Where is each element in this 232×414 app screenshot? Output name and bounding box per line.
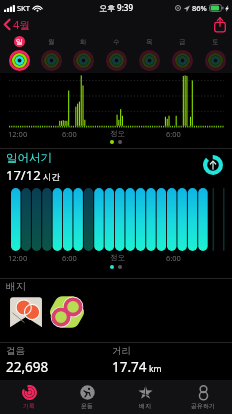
button[interactable]: 화: [67, 33, 100, 73]
staticText: 운동: [81, 402, 93, 410]
staticText: 17/12: [6, 166, 41, 184]
staticText: 기록: [23, 402, 35, 410]
staticText: SKT: [17, 3, 30, 13]
staticText: 6:00: [166, 253, 181, 263]
staticText: 6:00: [62, 253, 77, 263]
staticText: 22,698: [6, 358, 49, 376]
staticText: 걸음: [6, 345, 25, 357]
staticText: 공유하기: [191, 402, 215, 410]
staticText: 금: [179, 38, 186, 46]
button[interactable]: 목: [133, 33, 166, 73]
staticText: 월: [48, 38, 55, 46]
staticText: 6:00: [166, 129, 181, 139]
button[interactable]: Badge: perfect week: [7, 293, 45, 331]
staticText: 토: [212, 38, 219, 46]
button[interactable]: 수: [100, 33, 133, 73]
staticText: 12:00: [8, 253, 28, 263]
staticText: 4월: [13, 17, 31, 31]
staticText: 목: [146, 38, 153, 46]
staticText: 배지: [6, 280, 26, 293]
button[interactable]: 배지: [116, 380, 174, 414]
button[interactable]: 기록: [0, 380, 58, 414]
button[interactable]: 월: [35, 33, 67, 73]
staticText: 수: [113, 38, 120, 46]
staticText: 일: [16, 38, 23, 46]
button[interactable]: 금: [166, 33, 199, 73]
staticText: 배지: [139, 402, 151, 410]
staticText: 시간: [43, 172, 60, 183]
button[interactable]: Badge: move goal: [48, 293, 86, 331]
button[interactable]: 4월: [0, 15, 39, 33]
button[interactable]: Share: [208, 16, 232, 33]
button[interactable]: 운동: [58, 380, 116, 414]
staticText: 정오: [110, 253, 125, 262]
staticText: km: [149, 363, 162, 375]
button[interactable]: 토: [199, 33, 232, 73]
staticText: 오후 9:39: [99, 2, 133, 13]
staticText: 정오: [110, 129, 125, 138]
staticText: 화: [80, 38, 87, 46]
staticText: 거리: [112, 345, 131, 357]
staticText: 일어서기: [6, 151, 52, 165]
button[interactable]: 공유하기: [174, 380, 232, 414]
staticText: 86%: [192, 3, 207, 13]
staticText: 12:00: [8, 129, 28, 139]
staticText: 17.74: [112, 358, 147, 376]
staticText: 6:00: [62, 129, 77, 139]
button[interactable]: 일: [3, 33, 35, 73]
